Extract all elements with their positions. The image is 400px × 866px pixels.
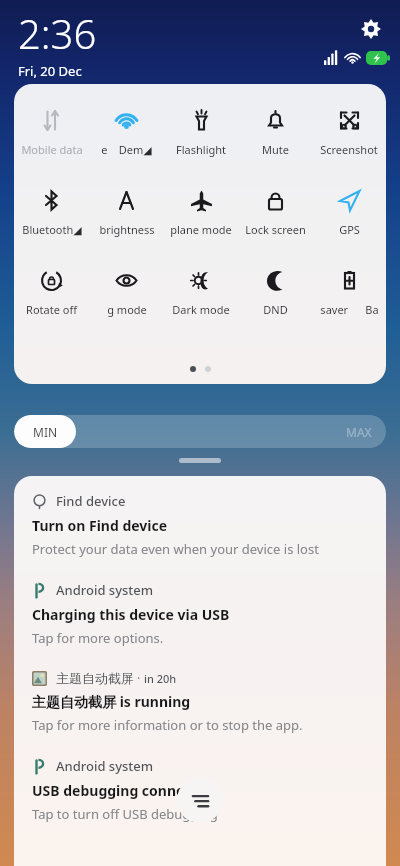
button[interactable]: Settings — [354, 12, 388, 46]
staticText: Screenshot — [320, 142, 378, 157]
button[interactable]: DND — [238, 266, 312, 319]
staticText: saver Ba — [320, 302, 379, 317]
button[interactable]: GPS — [312, 186, 386, 239]
staticText: Find device — [56, 492, 126, 510]
staticText: Fri, 20 Dec — [18, 62, 82, 80]
staticText: Bluetooth◢ — [22, 222, 82, 237]
button[interactable]: Bluetooth◢ — [14, 186, 89, 239]
staticText: MAX — [346, 424, 372, 440]
staticText: 主题自动截屏 — [56, 670, 134, 686]
staticText: e Dem◢ — [101, 142, 152, 157]
staticText: in 20h — [144, 671, 177, 686]
button[interactable]: Rotate off — [14, 266, 89, 319]
button[interactable]: plane mode — [164, 186, 238, 239]
staticText: Android system — [56, 757, 154, 775]
button[interactable]: Android system — [32, 757, 370, 823]
staticText: 2:36 — [18, 6, 97, 60]
button[interactable]: 主题自动截屏 — [32, 670, 370, 734]
staticText: plane mode — [170, 222, 232, 237]
staticText: Mute — [262, 142, 289, 157]
staticText: Tap for more options. — [32, 629, 164, 647]
staticText: Protect your data even when your device … — [32, 540, 319, 558]
button[interactable]: g mode — [89, 266, 164, 319]
staticText: Dark mode — [172, 302, 230, 317]
button[interactable]: Find device — [32, 492, 370, 558]
staticText: · — [134, 670, 144, 686]
staticText: USB debugging connected — [32, 781, 215, 800]
staticText: Turn on Find device — [32, 516, 168, 535]
button[interactable]: Dark mode — [164, 266, 238, 319]
button[interactable]: brightness — [89, 186, 164, 239]
button[interactable]: Flashlight — [164, 106, 238, 159]
button[interactable]: Lock screen — [238, 186, 312, 239]
button[interactable]: Mute — [238, 106, 312, 159]
staticText: Flashlight — [176, 142, 226, 157]
staticText: Tap for more information or to stop the … — [32, 716, 303, 734]
button[interactable]: MIN — [14, 415, 386, 448]
staticText: g mode — [107, 302, 147, 317]
staticText: Tap to turn off USB debugging — [32, 805, 218, 823]
staticText: Charging this device via USB — [32, 605, 230, 624]
staticText: GPS — [339, 222, 360, 237]
button[interactable]: e Dem◢ — [89, 106, 164, 159]
button[interactable]: Clear all notifications — [177, 777, 223, 823]
staticText: Android system — [56, 581, 154, 599]
button[interactable]: Mobile data — [14, 106, 89, 159]
staticText: MIN — [33, 424, 58, 440]
staticText: Rotate off — [26, 302, 77, 317]
staticText: DND — [263, 302, 288, 317]
staticText: Lock screen — [245, 222, 306, 237]
button[interactable]: Screenshot — [312, 106, 386, 159]
button[interactable]: saver Ba — [312, 266, 386, 319]
staticText: Mobile data — [21, 142, 83, 157]
staticText: brightness — [99, 222, 155, 237]
button[interactable]: Android system — [32, 581, 370, 647]
staticText: 主题自动截屏 is running — [32, 692, 191, 711]
